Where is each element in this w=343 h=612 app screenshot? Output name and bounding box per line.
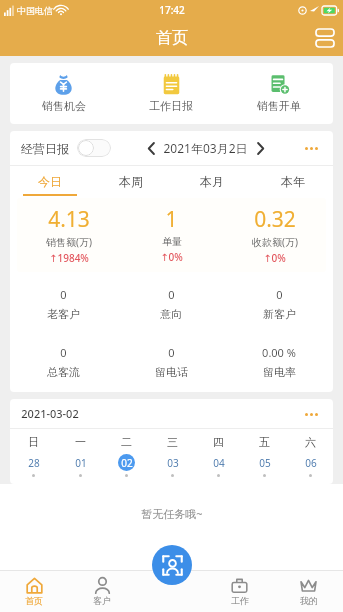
button[interactable]: 销售开单 [225,63,333,124]
staticText: 1 [165,205,178,234]
staticText: 0 [168,345,175,360]
button[interactable]: 我的 [274,570,343,612]
staticText: 17:42 [159,3,185,17]
staticText: 二 [121,435,132,449]
button[interactable]: 首页 [0,570,68,612]
staticText: 01 [75,456,87,470]
button[interactable]: 五 [241,435,287,477]
staticText: 一 [75,435,86,449]
staticText: 首页 [25,595,43,606]
button[interactable]: 三 [149,435,195,477]
staticText: 收款额(万) [252,235,298,249]
staticText: 28 [28,456,40,470]
button[interactable]: 更多 [300,403,322,425]
button[interactable]: 0.00 % [225,345,333,379]
button[interactable]: 本月 [171,166,252,196]
staticText: 4.13 [48,205,90,234]
staticText: 三 [167,435,178,449]
staticText: 中国电信 [17,5,53,16]
staticText: ↑0% [263,251,286,265]
staticText: 首页 [156,28,188,48]
staticText: 02 [121,456,133,470]
button[interactable]: 二 [103,435,149,477]
staticText: 2021-03-02 [21,406,79,421]
staticText: 日 [28,435,39,449]
button[interactable]: 0 [10,287,117,321]
staticText: 0.00 % [262,345,296,360]
button[interactable]: 菜单 [307,20,343,56]
button[interactable]: 下一天 [249,137,271,159]
staticText: 本周 [119,174,143,189]
button[interactable]: 本年 [252,166,333,196]
button[interactable]: 0 [117,287,225,321]
button[interactable]: 六 [287,435,333,477]
staticText: 四 [213,435,224,449]
button[interactable]: 0 [117,345,225,379]
button[interactable]: 一 [57,435,103,477]
staticText: ↑0% [160,250,183,264]
button[interactable]: 更多 [300,137,322,159]
button[interactable]: 四 [195,435,241,477]
staticText: 0 [276,287,283,302]
button[interactable]: 0 [225,287,333,321]
staticText: 老客户 [47,307,80,321]
button[interactable]: 工作日报 [117,63,225,124]
staticText: 客户 [93,595,111,606]
button[interactable]: 工作 [205,570,274,612]
staticText: 销售额(万) [46,235,92,249]
staticText: 留电话 [155,365,188,379]
button[interactable]: 本周 [90,166,171,196]
button[interactable]: 4.13 [17,205,120,265]
staticText: 新客户 [263,307,296,321]
staticText: 留电率 [263,365,296,379]
button[interactable]: 扫一扫 [152,545,192,585]
staticText: 0 [168,287,175,302]
staticText: 销售机会 [42,99,86,113]
staticText: 04 [213,456,225,470]
staticText: 总客流 [47,365,80,379]
button[interactable]: 1 [120,205,223,264]
staticText: 今日 [38,174,62,189]
staticText: 2021年03月2日 [163,140,248,156]
staticText: 经营日报 [21,141,69,156]
button[interactable]: 销售机会 [10,63,117,124]
staticText: 03 [167,456,179,470]
staticText: 五 [259,435,270,449]
staticText: 工作日报 [149,99,193,113]
staticText: 0.32 [254,205,296,234]
staticText: 本年 [281,174,305,189]
staticText: 06 [305,456,317,470]
staticText: 05 [259,456,271,470]
button[interactable]: 0 [10,345,117,379]
staticText: 0 [60,345,67,360]
button[interactable]: 客户 [68,570,136,612]
staticText: 我的 [300,595,318,606]
staticText: 本月 [200,174,224,189]
staticText: 工作 [231,595,249,606]
button[interactable]: 0.32 [223,205,326,265]
button[interactable] [77,139,111,157]
button[interactable]: 上一天 [140,137,162,159]
button[interactable]: 今日 [10,166,90,196]
staticText: 0 [60,287,67,302]
staticText: 意向 [160,307,182,321]
staticText: 六 [305,435,316,449]
staticText: ↑1984% [49,251,89,265]
staticText: 单量 [162,235,182,248]
staticText: 暂无任务哦~ [141,506,203,521]
staticText: 销售开单 [257,99,301,113]
button[interactable]: 日 [10,435,57,477]
